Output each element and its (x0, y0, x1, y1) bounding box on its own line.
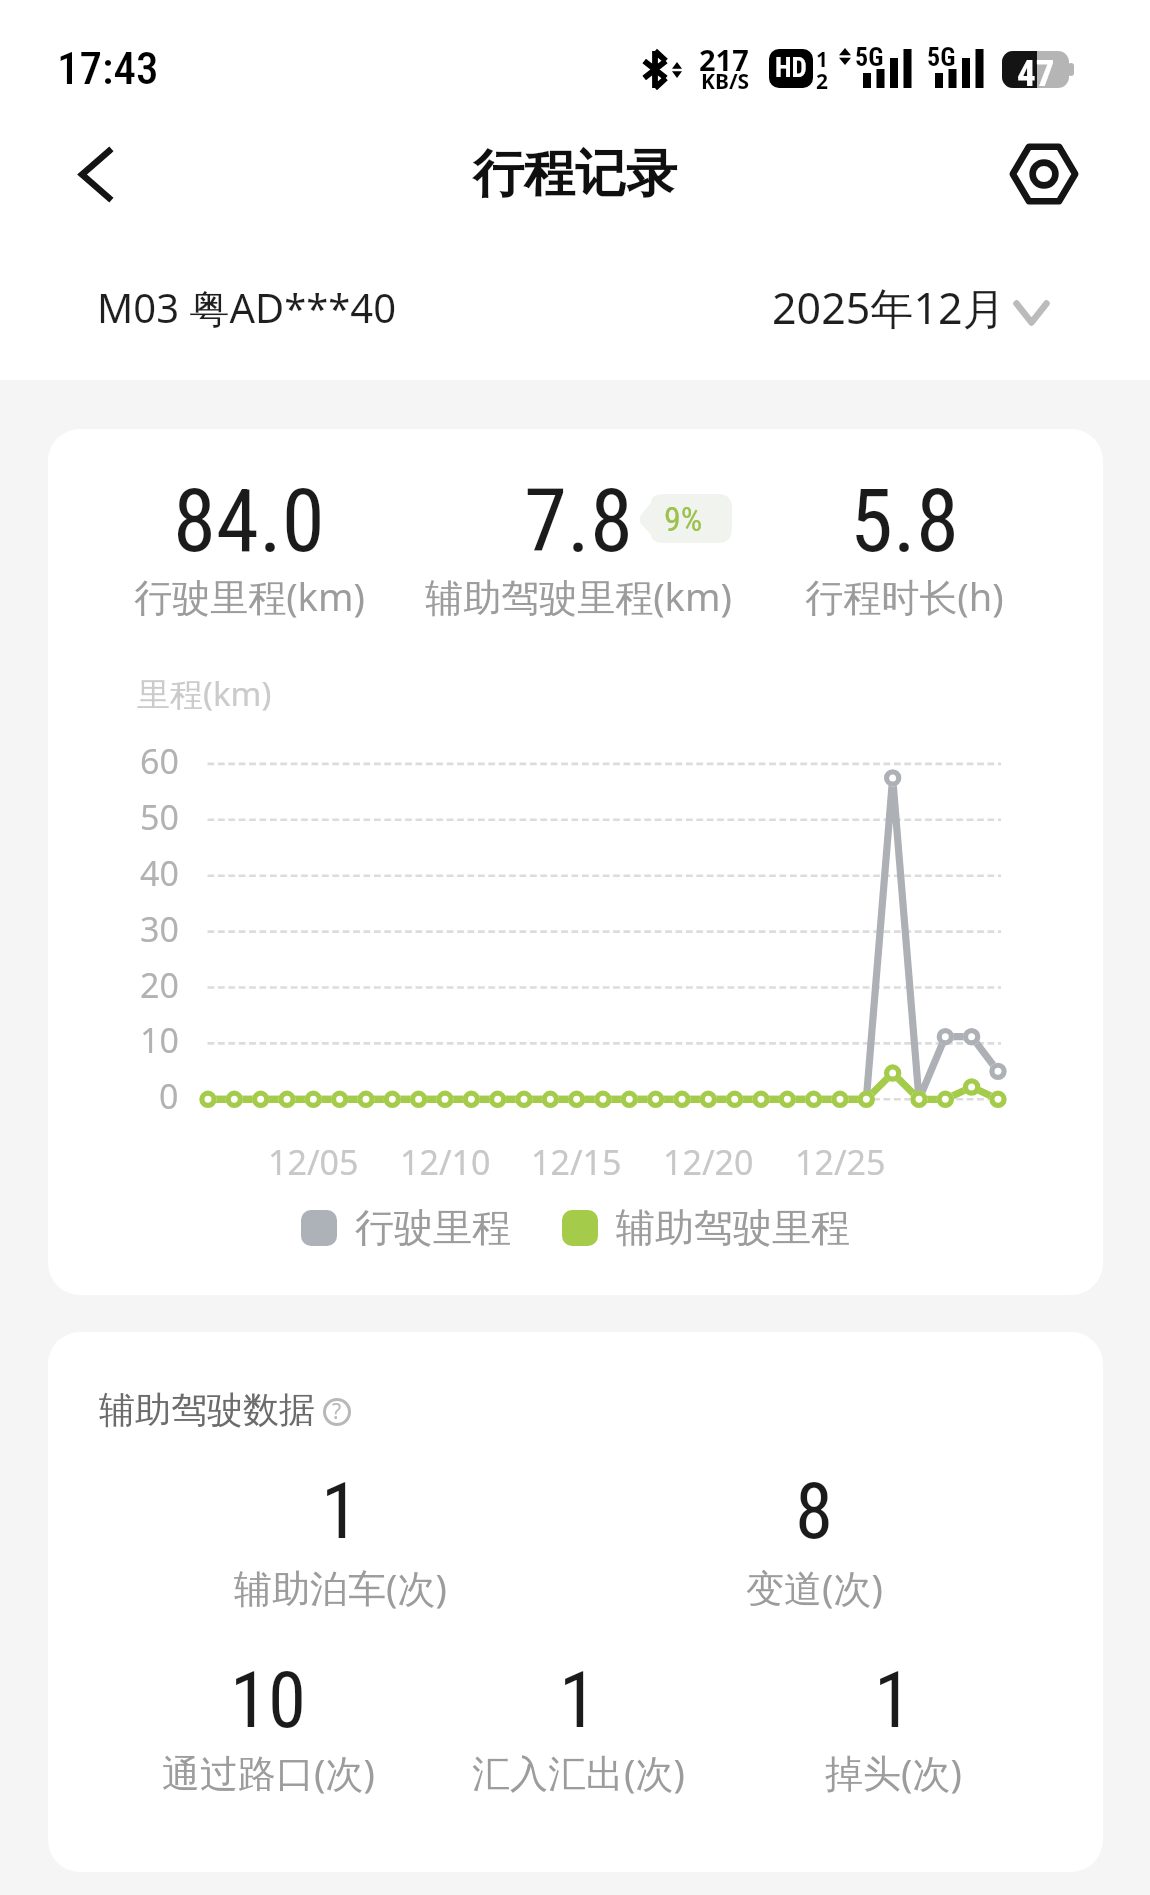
staticText: 7.8 (524, 470, 633, 572)
staticText: 行驶里程 (355, 1203, 511, 1252)
staticText: ? (332, 1397, 342, 1425)
staticText: 1 (874, 1656, 913, 1746)
staticText: 10 (140, 1017, 179, 1063)
staticText: 50 (140, 794, 179, 840)
staticText: 30 (140, 906, 179, 952)
button[interactable]: 2025年12月 (757, 242, 1067, 372)
staticText: 12/20 (663, 1139, 754, 1185)
staticText: 0 (159, 1073, 179, 1119)
staticText: 10 (230, 1656, 307, 1746)
staticText: 17:43 (57, 42, 159, 95)
staticText: 辅助驾驶里程(km) (425, 570, 732, 622)
staticText: KB/S (701, 67, 750, 96)
staticText: 行驶里程(km) (134, 570, 365, 622)
button[interactable]: Back (30, 114, 160, 234)
staticText: 5G (927, 42, 956, 72)
staticText: 2025年12月 (772, 278, 1006, 337)
button[interactable]: Help, about assisted driving data (323, 1398, 351, 1426)
staticText: 行程时长(h) (805, 570, 1004, 622)
staticText: 84.0 (173, 470, 325, 572)
staticText: 217 (699, 40, 749, 79)
staticText: 5G (855, 42, 884, 72)
staticText: 辅助驾驶里程 (616, 1203, 850, 1252)
staticText: 12/10 (400, 1139, 491, 1185)
staticText: 12/05 (268, 1139, 359, 1185)
staticText: 1 (321, 1467, 360, 1557)
staticText: 9% (664, 499, 703, 539)
staticText: 47 (1017, 52, 1055, 89)
staticText: 辅助泊车(次) (234, 1561, 447, 1613)
staticText: M03 粤AD***40 (97, 280, 397, 335)
staticText: 12/25 (795, 1139, 886, 1185)
staticText: 辅助驾驶数据 (99, 1387, 315, 1432)
staticText: 20 (140, 962, 179, 1008)
staticText: 60 (140, 738, 179, 784)
staticText: 里程(km) (137, 671, 272, 716)
staticText: 掉头(次) (825, 1746, 962, 1798)
staticText: 变道(次) (746, 1561, 883, 1613)
button[interactable]: Settings (979, 114, 1109, 234)
staticText: 通过路口(次) (162, 1746, 375, 1798)
staticText: 8 (795, 1467, 834, 1557)
staticText: 1 (816, 45, 829, 74)
staticText: HD (775, 52, 807, 84)
staticText: 行程记录 (473, 142, 677, 206)
staticText: 2 (816, 67, 829, 96)
staticText: 1 (559, 1656, 598, 1746)
staticText: 5.8 (850, 470, 959, 572)
staticText: 40 (140, 850, 179, 896)
staticText: 12/15 (531, 1139, 622, 1185)
staticText: 汇入汇出(次) (472, 1746, 685, 1798)
